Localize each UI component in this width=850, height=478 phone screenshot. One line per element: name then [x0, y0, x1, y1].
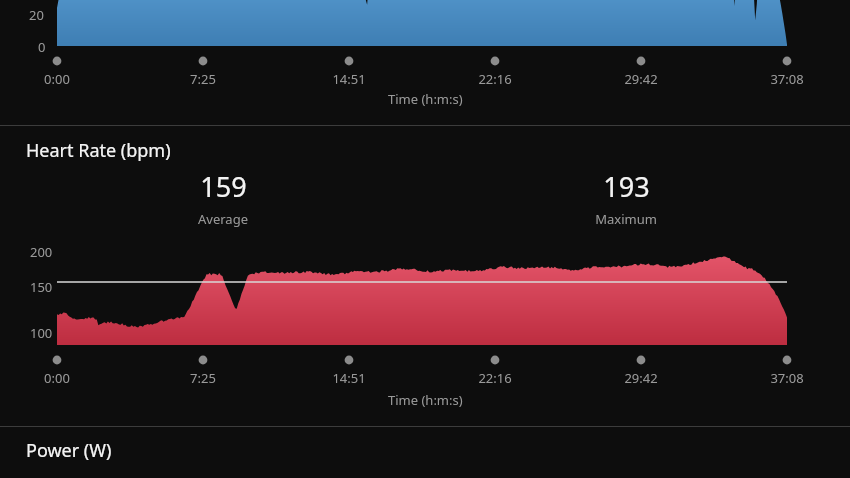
- staticText: Heart Rate (bpm): [26, 138, 171, 163]
- staticText: 0:00: [44, 369, 70, 387]
- button[interactable]: 20: [0, 0, 850, 125]
- button[interactable]: 159: [163, 168, 283, 228]
- staticText: 22:16: [478, 70, 512, 88]
- staticText: 14:51: [332, 70, 366, 88]
- staticText: Maximum: [595, 210, 657, 228]
- staticText: 7:25: [190, 369, 216, 387]
- button[interactable]: 193: [566, 168, 686, 228]
- staticText: Time (h:m:s): [388, 391, 463, 409]
- staticText: 200: [30, 243, 53, 261]
- staticText: 100: [30, 324, 53, 342]
- staticText: 159: [200, 168, 247, 205]
- staticText: 14:51: [332, 369, 366, 387]
- staticText: 7:25: [190, 70, 216, 88]
- staticText: 29:42: [624, 369, 658, 387]
- staticText: 37:08: [770, 70, 804, 88]
- staticText: 29:42: [624, 70, 658, 88]
- staticText: 0: [38, 38, 46, 56]
- staticText: Average: [198, 210, 248, 228]
- staticText: 20: [29, 6, 44, 24]
- staticText: 22:16: [478, 369, 512, 387]
- staticText: 193: [603, 168, 650, 205]
- staticText: 0:00: [44, 70, 70, 88]
- staticText: 150: [30, 278, 53, 296]
- staticText: 37:08: [770, 369, 804, 387]
- button[interactable]: Power (W): [0, 427, 850, 478]
- staticText: Time (h:m:s): [388, 90, 463, 108]
- staticText: Power (W): [26, 438, 112, 463]
- button[interactable]: Heart Rate (bpm): [0, 126, 850, 426]
